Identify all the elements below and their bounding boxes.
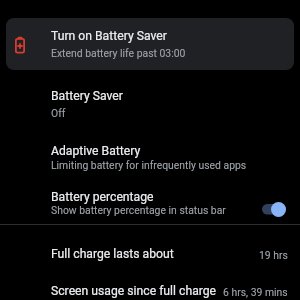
staticText: Show battery percentage in status bar [51, 204, 226, 216]
staticText: 19 hrs [259, 249, 288, 261]
staticText: 6 hrs, 39 mins [223, 286, 288, 298]
staticText: Battery percentage [51, 190, 154, 204]
button[interactable]: Battery percentage [0, 184, 300, 224]
staticText: Limiting battery for infrequently used a… [51, 159, 247, 171]
button[interactable]: Turn on Battery Saver [6, 18, 294, 70]
button[interactable]: Screen usage since full charge [0, 272, 300, 300]
staticText: Adaptive Battery [51, 144, 141, 158]
button[interactable] [258, 198, 292, 222]
staticText: Turn on Battery Saver [51, 29, 167, 43]
staticText: Full charge lasts about [51, 247, 174, 261]
staticText: Extend battery life past 03:00 [51, 47, 186, 59]
button[interactable]: Adaptive Battery [0, 132, 300, 184]
staticText: Battery Saver [51, 89, 123, 103]
button[interactable]: Battery Saver [0, 76, 300, 132]
button[interactable]: Full charge lasts about [0, 225, 300, 272]
staticText: Screen usage since full charge [51, 284, 217, 298]
staticText: Off [51, 107, 66, 119]
